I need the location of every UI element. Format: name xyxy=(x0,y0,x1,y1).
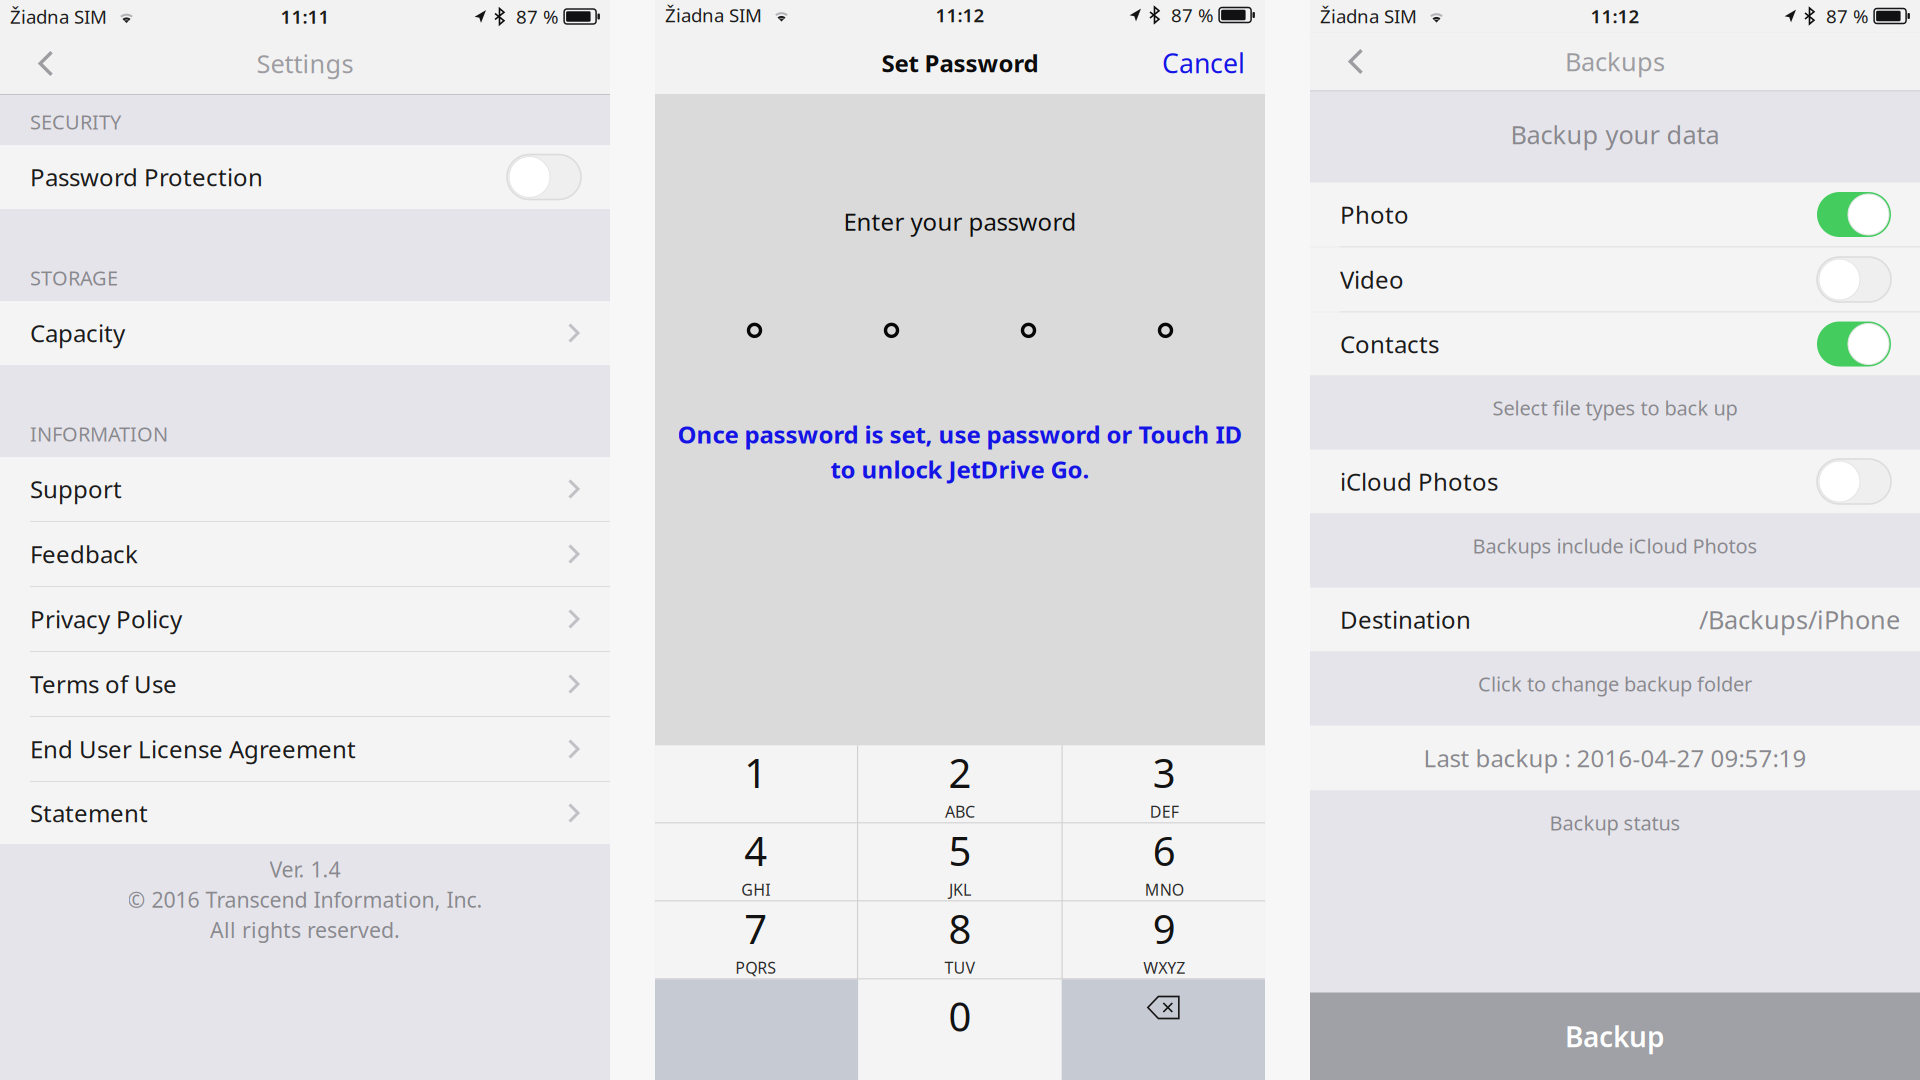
staticText: GHI xyxy=(741,879,770,900)
staticText: Click to change backup folder xyxy=(1478,670,1752,697)
staticText: Photo xyxy=(1340,199,1409,230)
staticText: /Backups/iPhone xyxy=(1699,603,1900,636)
button[interactable]: 9 xyxy=(1063,901,1266,978)
staticText: Password Protection xyxy=(30,161,263,193)
staticText: Settings xyxy=(256,47,353,80)
button[interactable]: Capacity xyxy=(0,301,610,365)
button[interactable]: 8 xyxy=(858,901,1062,978)
button[interactable]: 4 xyxy=(654,823,857,900)
staticText: Backups include iCloud Photos xyxy=(1472,532,1757,559)
button[interactable]: 6 xyxy=(1063,823,1266,900)
staticText: All rights reserved. xyxy=(210,916,400,944)
staticText: MNO xyxy=(1145,879,1184,900)
button[interactable]: Delete xyxy=(1062,979,1265,1080)
staticText: 6 xyxy=(1153,824,1176,877)
staticText: INFORMATION xyxy=(30,420,168,447)
staticText: Select file types to back up xyxy=(1492,394,1737,421)
staticText: Enter your password xyxy=(843,205,1076,237)
button[interactable]: End User License Agreement xyxy=(0,717,610,781)
staticText: STORAGE xyxy=(30,264,118,291)
button[interactable]: iCloud Photos xyxy=(1310,449,1920,513)
button[interactable]: 3 xyxy=(1063,745,1266,822)
button[interactable]: Contacts xyxy=(1310,312,1920,375)
button[interactable]: Video xyxy=(1310,247,1920,311)
button[interactable]: Destination xyxy=(1310,587,1920,651)
staticText: 4 xyxy=(744,824,767,877)
button[interactable]: Back xyxy=(1324,32,1388,90)
staticText: Terms of Use xyxy=(30,668,177,700)
staticText: TUV xyxy=(944,957,975,978)
staticText: Ver. 1.4 xyxy=(269,855,340,883)
staticText: 5 xyxy=(948,824,971,877)
staticText: ABC xyxy=(945,801,975,822)
staticText: Support xyxy=(30,473,122,505)
button[interactable]: Photo xyxy=(1310,182,1920,246)
staticText: JKL xyxy=(949,879,971,900)
staticText: 87 % xyxy=(1171,3,1214,27)
button[interactable]: Password Protection xyxy=(0,145,610,209)
staticText: 1 xyxy=(744,746,767,799)
button[interactable]: Privacy Policy xyxy=(0,587,610,651)
button[interactable]: Backup xyxy=(1310,992,1920,1080)
staticText: Backups xyxy=(1565,45,1665,78)
staticText: Žiadna SIM xyxy=(10,4,107,29)
staticText: Destination xyxy=(1340,604,1471,635)
staticText: 7 xyxy=(744,902,767,955)
button[interactable]: Support xyxy=(0,457,610,521)
staticText: Once password is set, use password or To… xyxy=(677,418,1242,450)
staticText: 11:12 xyxy=(935,3,984,27)
button[interactable]: Terms of Use xyxy=(0,652,610,716)
staticText: 11:11 xyxy=(280,4,329,29)
staticText: DEF xyxy=(1150,801,1179,822)
staticText: Contacts xyxy=(1340,328,1439,360)
button[interactable]: 0 xyxy=(858,979,1062,1080)
staticText: Backup status xyxy=(1549,809,1680,836)
staticText: PQRS xyxy=(735,957,776,978)
staticText: Backup your data xyxy=(1510,117,1719,151)
staticText: Žiadna SIM xyxy=(665,3,762,27)
staticText: iCloud Photos xyxy=(1340,466,1498,497)
staticText: Last backup : 2016-04-27 09:57:19 xyxy=(1423,742,1806,774)
staticText: Žiadna SIM xyxy=(1320,4,1417,28)
staticText: 87 % xyxy=(1826,4,1869,28)
staticText: Set Password xyxy=(881,47,1038,79)
staticText: Backup xyxy=(1565,1018,1665,1055)
staticText: Video xyxy=(1340,264,1404,295)
button[interactable]: Feedback xyxy=(0,522,610,586)
staticText: 2 xyxy=(948,746,971,799)
staticText: Statement xyxy=(30,797,148,829)
staticText: 87 % xyxy=(516,4,559,29)
staticText: 8 xyxy=(948,902,971,955)
staticText: WXYZ xyxy=(1143,957,1185,978)
button[interactable]: 5 xyxy=(858,823,1062,900)
button[interactable]: 1 xyxy=(654,745,857,822)
staticText: 9 xyxy=(1153,902,1176,955)
button[interactable]: Back xyxy=(14,33,78,94)
staticText: Feedback xyxy=(30,538,138,570)
staticText: SECURITY xyxy=(30,108,121,135)
staticText: 0 xyxy=(948,989,971,1043)
button[interactable]: 7 xyxy=(654,901,857,978)
staticText: Capacity xyxy=(30,317,125,349)
button[interactable]: Cancel xyxy=(1162,31,1245,94)
staticText: 11:12 xyxy=(1590,4,1639,28)
staticText: End User License Agreement xyxy=(30,733,356,765)
button[interactable]: 2 xyxy=(858,745,1062,822)
staticText: 3 xyxy=(1153,746,1176,799)
staticText: © 2016 Transcend Information, Inc. xyxy=(127,885,482,914)
staticText: Privacy Policy xyxy=(30,603,182,635)
staticText: to unlock JetDrive Go. xyxy=(830,453,1089,485)
staticText: Cancel xyxy=(1162,45,1245,81)
button[interactable]: Statement xyxy=(0,782,610,844)
